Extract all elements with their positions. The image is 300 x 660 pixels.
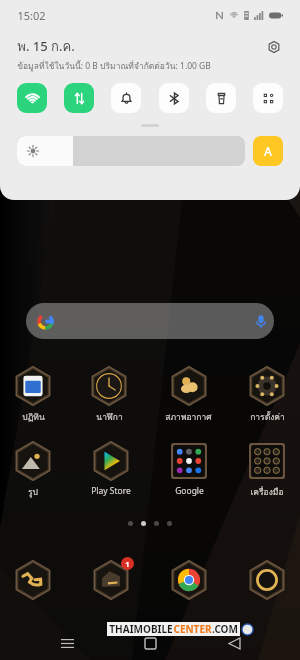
button[interactable]: การตั้งค่า [246, 365, 288, 424]
button[interactable]: Ringtone [111, 83, 141, 113]
button[interactable]: ปฏิทิน [12, 365, 54, 424]
staticText: พ. 15 ก.ค. [17, 36, 75, 57]
button[interactable]: More settings [253, 83, 283, 113]
staticText: สภาพอากาศ [165, 410, 212, 424]
button[interactable]: Google [168, 440, 210, 497]
staticText: THAIMOBILE [109, 622, 173, 636]
staticText: Play Store [91, 485, 131, 497]
button[interactable]: เครื่องมือ [246, 440, 288, 499]
button[interactable]: Mobile data [64, 83, 94, 113]
button[interactable]: Flashlight [206, 83, 236, 113]
button[interactable]: รูป [12, 440, 54, 499]
button[interactable]: สภาพอากาศ [165, 365, 212, 424]
staticText: ปฏิทิน [22, 410, 45, 424]
button[interactable]: Play Store [90, 440, 132, 497]
button[interactable]: นาฬิกา [88, 365, 130, 424]
button[interactable] [168, 559, 210, 616]
button[interactable] [246, 559, 288, 616]
staticText: เครื่องมือ [250, 485, 284, 499]
staticText: Google [175, 485, 204, 497]
button[interactable]: Back [217, 630, 251, 656]
button[interactable]: Brightness [17, 136, 245, 166]
staticText: CENTER [173, 622, 212, 636]
button[interactable] [12, 559, 54, 616]
staticText: 1 [125, 559, 130, 569]
button[interactable]: Bluetooth [159, 83, 189, 113]
button[interactable]: 1 [90, 559, 132, 616]
staticText: A [264, 143, 272, 159]
staticText: ข้อมูลที่ใช้ในวันนี้: 0 B ปริมาณที่จำกัด… [17, 59, 211, 73]
staticText: นาฬิกา [96, 410, 123, 424]
button[interactable]: Wi-Fi [17, 83, 47, 113]
staticText: .COM [212, 622, 238, 636]
staticText: รูป [28, 485, 38, 499]
button[interactable]: Settings [263, 36, 285, 58]
button[interactable]: A [253, 136, 283, 166]
button[interactable]: Recents [50, 630, 84, 656]
button[interactable]: Home [133, 630, 167, 656]
button[interactable] [26, 303, 274, 339]
staticText: การตั้งค่า [250, 410, 285, 424]
staticText: 15:02 [17, 8, 46, 23]
